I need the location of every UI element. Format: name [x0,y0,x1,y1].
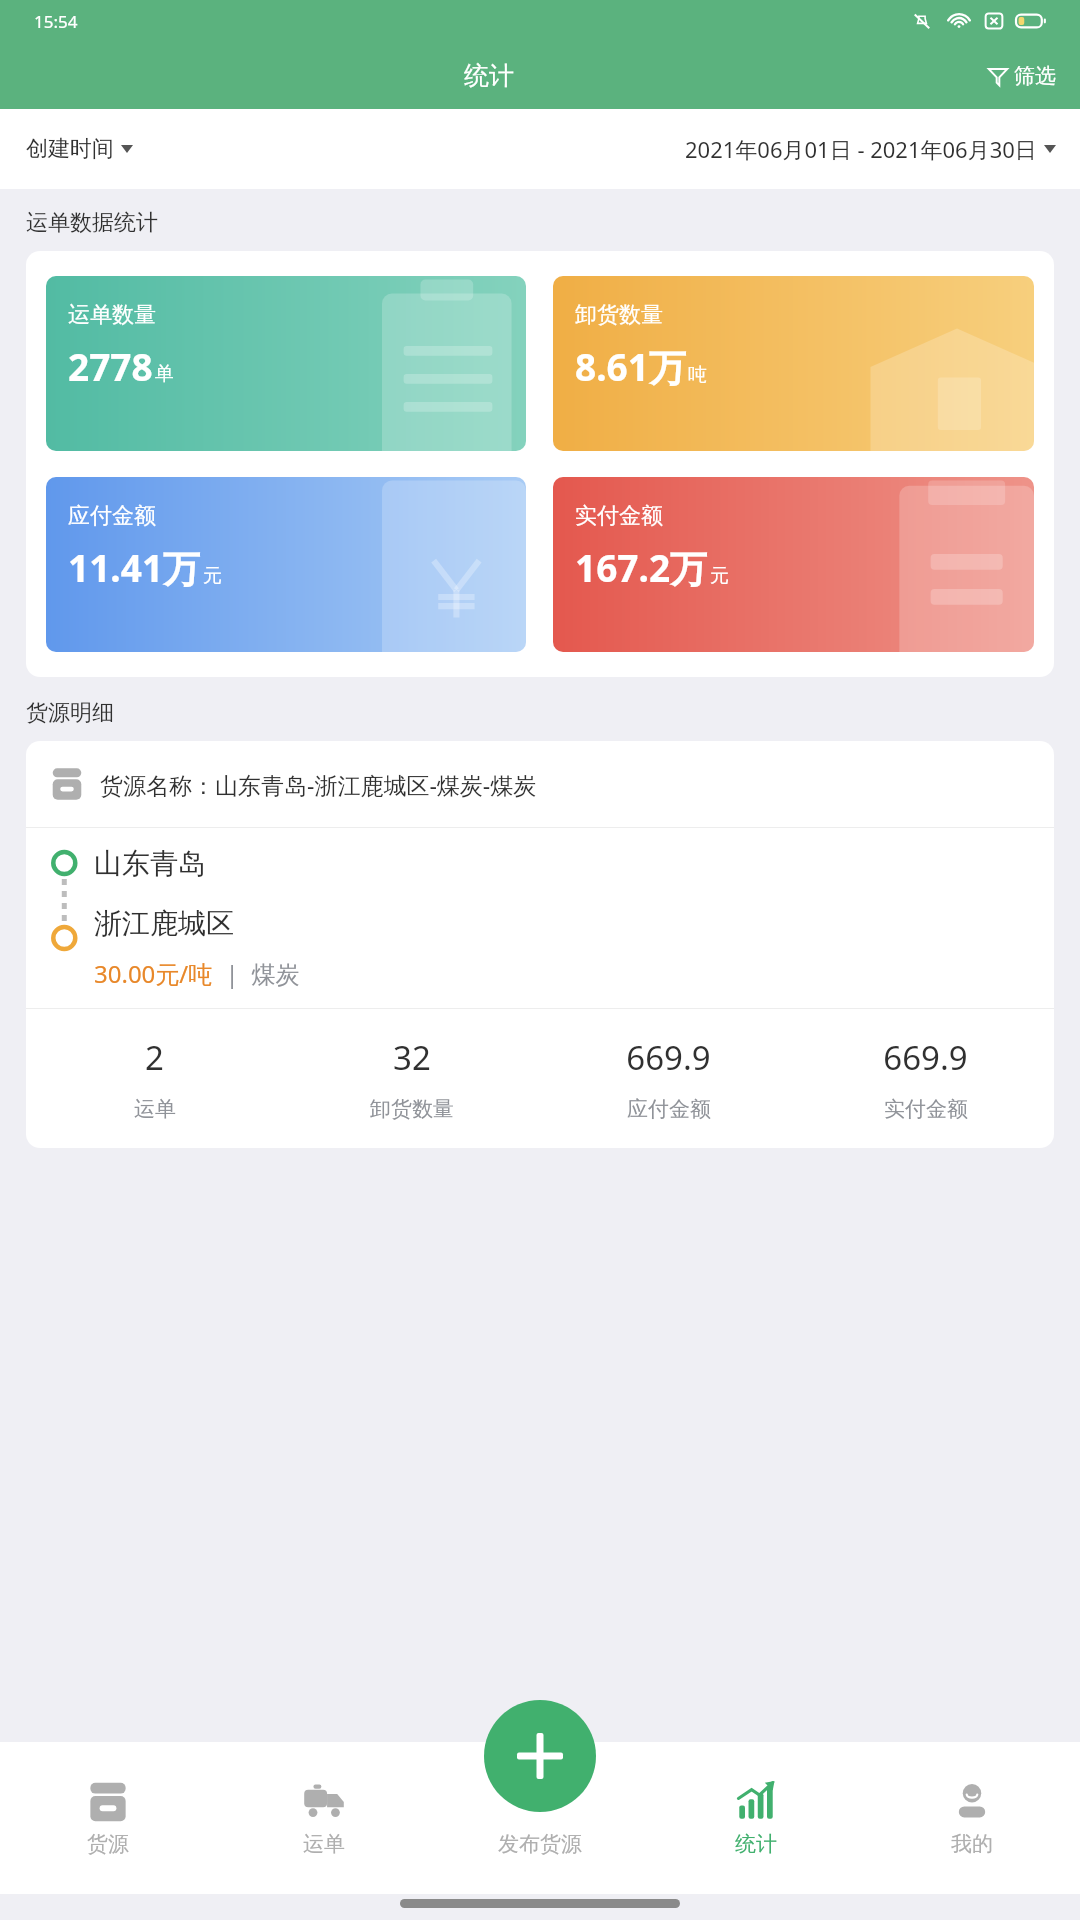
button[interactable]: 实付金额 [553,477,1034,652]
staticText: 实付金额 [575,502,663,530]
staticText: 实付金额 [884,1096,968,1122]
staticText: 应付金额 [627,1096,711,1122]
button[interactable]: 统计 [648,1742,864,1894]
staticText: 30.00元/吨 [94,957,213,990]
staticText: 2778 [68,341,153,391]
staticText: 运单数量 [68,301,156,329]
staticText: 我的 [951,1831,993,1857]
staticText: 发布货源 [498,1831,582,1857]
staticText: 货源名称：山东青岛-浙江鹿城区-煤炭-煤炭 [100,769,537,800]
staticText: 浙江鹿城区 [94,906,234,941]
button[interactable]: 应付金额 [46,477,526,652]
staticText: 统计 [735,1831,777,1857]
staticText: 卸货数量 [575,301,663,329]
staticText: 167.2万 [575,542,708,593]
button[interactable]: 卸货数量 [553,276,1034,451]
button[interactable]: 发布货源 [432,1742,648,1894]
staticText: 669.9 [626,1035,711,1080]
button[interactable]: 2021年06月01日 - 2021年06月30日 [675,126,1066,172]
staticText: | 煤炭 [213,957,300,990]
staticText: 卸货数量 [370,1096,454,1122]
staticText: 运单 [303,1831,345,1857]
staticText: 吨 [688,363,707,387]
staticText: 8.61万 [575,341,686,392]
staticText: 货源明细 [26,699,114,727]
staticText: 运单数据统计 [26,209,158,237]
button[interactable]: 运单 [216,1742,432,1894]
staticText: 山东青岛 [94,846,206,881]
staticText: 元 [710,564,729,588]
button[interactable]: 运单数量 [46,276,526,451]
staticText: 元 [203,564,222,588]
staticText: 创建时间 [26,135,114,163]
staticText: 货源 [87,1831,129,1857]
button[interactable]: 筛选 [979,57,1064,95]
button[interactable]: 我的 [864,1742,1080,1894]
staticText: 11.41万 [68,542,201,593]
button[interactable]: 货源 [0,1742,216,1894]
staticText: 筛选 [1014,63,1056,89]
staticText: 应付金额 [68,502,156,530]
staticText: 2021年06月01日 - 2021年06月30日 [685,134,1037,164]
staticText: 669.9 [883,1035,968,1080]
button[interactable]: 发布货源 [484,1700,596,1812]
staticText: 2 [145,1035,164,1080]
staticText: 32 [393,1035,431,1080]
staticText: 统计 [464,60,514,91]
staticText: 单 [155,362,174,386]
staticText: 运单 [134,1096,176,1122]
staticText: 15:54 [34,10,78,33]
button[interactable]: 货源名称：山东青岛-浙江鹿城区-煤炭-煤炭 [26,741,1054,1148]
button[interactable]: 创建时间 [16,127,143,171]
